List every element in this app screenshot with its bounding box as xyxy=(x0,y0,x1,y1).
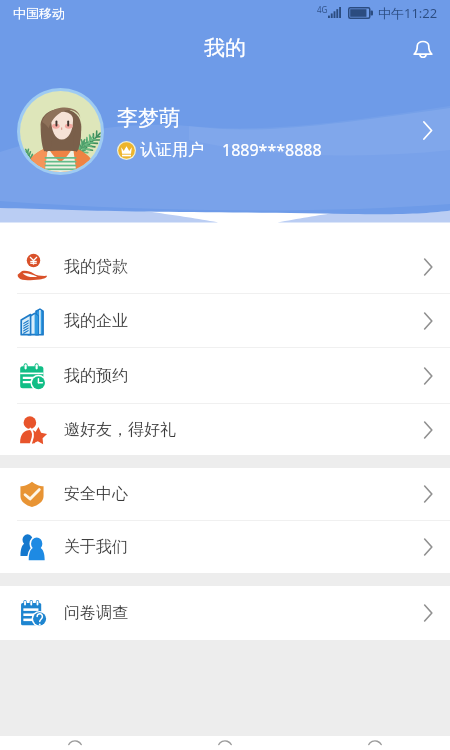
button[interactable]: 安全中心 xyxy=(0,468,450,520)
button[interactable]: 关于我们 xyxy=(0,521,450,573)
button[interactable]: Tab 1 xyxy=(0,736,150,750)
staticText: 关于我们 xyxy=(64,537,128,557)
button[interactable]: 李梦萌 xyxy=(0,88,450,178)
staticText: 邀好友，得好礼 xyxy=(64,420,176,440)
staticText: 4G xyxy=(317,4,328,15)
staticText: 我的 xyxy=(204,35,246,61)
staticText: 我的企业 xyxy=(64,311,128,331)
staticText: 安全中心 xyxy=(64,484,128,504)
staticText: 我的贷款 xyxy=(64,257,128,277)
staticText: 中国移动 xyxy=(13,5,65,21)
staticText: 李梦萌 xyxy=(117,105,180,131)
button[interactable]: 我的预约 xyxy=(0,348,450,403)
staticText: 中午11:22 xyxy=(378,4,438,22)
button[interactable]: 邀好友，得好礼 xyxy=(0,404,450,455)
staticText: 问卷调查 xyxy=(64,603,128,623)
button[interactable]: Tab 3 xyxy=(300,736,450,750)
staticText: 我的预约 xyxy=(64,366,128,386)
button[interactable]: Tab 2 xyxy=(150,736,300,750)
button[interactable]: 我的企业 xyxy=(0,294,450,347)
button[interactable]: 我的贷款 xyxy=(0,240,450,293)
button[interactable]: 问卷调查 xyxy=(0,586,450,640)
staticText: 1889***8888 xyxy=(222,139,322,161)
button[interactable]: Notifications xyxy=(405,30,441,66)
staticText: 认证用户 xyxy=(140,140,204,160)
